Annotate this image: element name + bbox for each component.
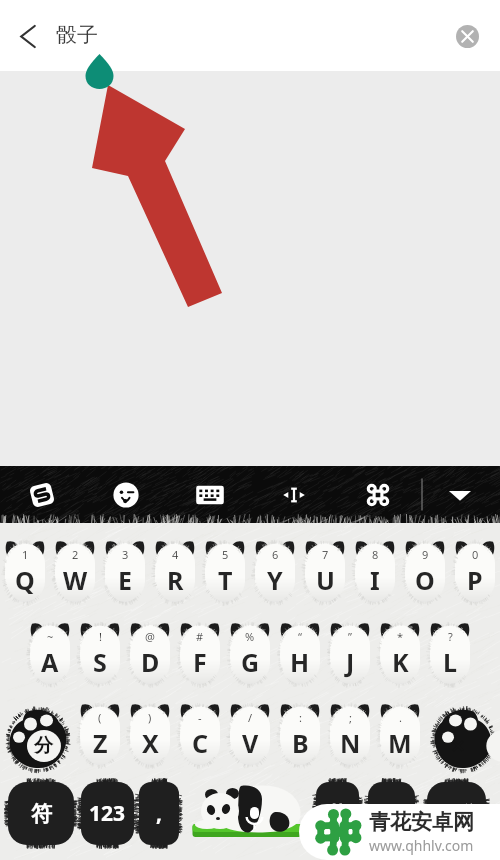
staticText: ( [98, 710, 102, 725]
staticText: : [299, 710, 302, 725]
button[interactable]: 3 [100, 540, 150, 602]
staticText: 9 [422, 547, 429, 562]
button[interactable]: @ [125, 622, 175, 684]
button[interactable]: ? [425, 622, 475, 684]
staticText: 2 [72, 547, 79, 562]
staticText: Q [15, 563, 35, 597]
staticText: E [118, 563, 133, 597]
button[interactable]: Delete [425, 703, 500, 769]
button[interactable]: Move cursor [252, 466, 336, 523]
staticText: W [63, 563, 88, 597]
button[interactable]: Keyboard layout [168, 466, 252, 523]
staticText: U [316, 563, 335, 597]
button[interactable]: ~ [25, 622, 75, 684]
staticText: K [392, 645, 409, 679]
button[interactable]: “ [275, 622, 325, 684]
staticText: 分 [34, 734, 53, 758]
button[interactable]: Switch language [0, 703, 75, 769]
button[interactable]: , [139, 782, 179, 845]
button[interactable]: 英 [316, 782, 359, 845]
staticText: Y [267, 563, 283, 597]
staticText: 8 [372, 547, 379, 562]
staticText: 6 [272, 547, 279, 562]
staticText: 青花安卓网 [369, 809, 474, 835]
staticText: 5 [222, 547, 229, 562]
button[interactable]: 符 [8, 782, 74, 845]
staticText: 英 [328, 802, 347, 826]
button[interactable]: 7 [300, 540, 350, 602]
staticText: www.qhhlv.com [369, 836, 474, 855]
staticText: ” [348, 629, 352, 644]
button[interactable]: ! [75, 622, 125, 684]
staticText: H [290, 645, 310, 679]
staticText: 发送 [438, 802, 476, 826]
staticText: 3 [122, 547, 129, 562]
button[interactable]: # [175, 622, 225, 684]
staticText: R [167, 563, 184, 597]
staticText: # [196, 629, 204, 644]
button[interactable]: ) [125, 703, 175, 765]
staticText: ✕ [450, 735, 466, 757]
button[interactable]: Back [0, 8, 56, 64]
staticText: J [346, 645, 355, 679]
staticText: . [399, 710, 402, 725]
staticText: 4 [172, 547, 179, 562]
staticText: ; [349, 710, 352, 725]
staticText: C [192, 726, 209, 760]
staticText: G [241, 645, 260, 679]
staticText: 0 [472, 547, 479, 562]
button[interactable]: 2 [50, 540, 100, 602]
button[interactable]: 123 [81, 782, 134, 845]
staticText: F [193, 645, 207, 679]
staticText: S [93, 645, 107, 679]
staticText: V [242, 726, 259, 760]
button[interactable]: Space [187, 782, 311, 845]
button[interactable]: ( [75, 703, 125, 765]
staticText: 1 [22, 547, 29, 562]
staticText: - [198, 710, 202, 725]
staticText: ) [148, 710, 152, 725]
staticText: * [397, 629, 404, 644]
staticText: “ [298, 629, 302, 644]
staticText: ~ [47, 629, 54, 644]
staticText: 符 [31, 801, 52, 827]
staticText: O [415, 563, 435, 597]
staticText: I [370, 563, 380, 597]
staticText: , [156, 799, 162, 828]
button[interactable]: ” [325, 622, 375, 684]
button[interactable]: Sogou input [0, 466, 84, 523]
button[interactable]: 6 [250, 540, 300, 602]
button[interactable]: Close [447, 16, 487, 56]
staticText: ! [99, 629, 102, 644]
staticText: 7 [322, 547, 329, 562]
button[interactable]: 0 [450, 540, 500, 602]
staticText: A [41, 645, 59, 679]
staticText: ? [448, 629, 453, 644]
button[interactable]: Hide keyboard [420, 466, 500, 523]
button[interactable]: / [225, 703, 275, 765]
button[interactable]: 。 [368, 782, 415, 845]
button[interactable]: : [275, 703, 325, 765]
staticText: T [218, 563, 233, 597]
staticText: 123 [89, 799, 126, 828]
staticText: B [292, 726, 309, 760]
button[interactable]: % [225, 622, 275, 684]
button[interactable]: Settings [336, 466, 420, 523]
button[interactable]: * [375, 622, 425, 684]
button[interactable]: 5 [200, 540, 250, 602]
button[interactable]: 发送 [427, 782, 486, 845]
staticText: @ [145, 629, 155, 644]
staticText: Z [93, 726, 108, 760]
staticText: L [443, 645, 457, 679]
staticText: 骰子 [56, 22, 98, 48]
staticText: 。 [382, 802, 401, 826]
button[interactable]: 1 [0, 540, 50, 602]
button[interactable]: . [375, 703, 425, 765]
button[interactable]: - [175, 703, 225, 765]
button[interactable]: Emoji [84, 466, 168, 523]
button[interactable]: 9 [400, 540, 450, 602]
staticText: / [248, 710, 253, 725]
button[interactable]: ; [325, 703, 375, 765]
button[interactable]: 8 [350, 540, 400, 602]
button[interactable]: 4 [150, 540, 200, 602]
